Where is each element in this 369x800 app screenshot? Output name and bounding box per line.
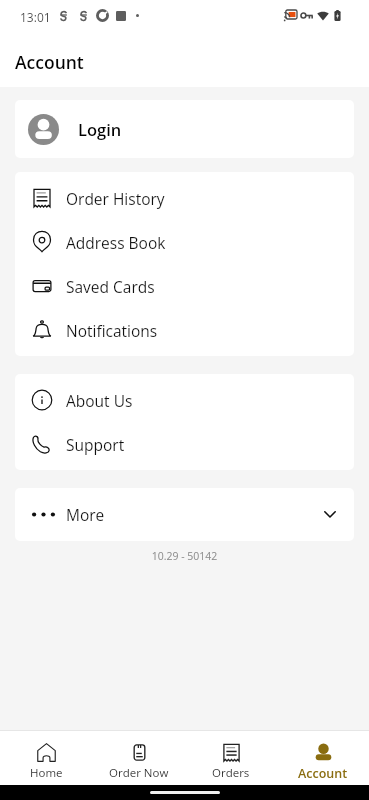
- button[interactable]: More: [15, 488, 354, 541]
- staticText: Notifications: [66, 320, 158, 341]
- staticText: Address Book: [66, 232, 166, 253]
- staticText: Order History: [66, 188, 165, 209]
- staticText: Account: [298, 765, 348, 782]
- staticText: 13:01: [20, 9, 51, 25]
- staticText: About Us: [66, 390, 133, 411]
- button[interactable]: Login: [15, 100, 354, 158]
- staticText: Login: [78, 118, 122, 140]
- button[interactable]: Order History: [15, 176, 354, 220]
- staticText: Order Now: [109, 765, 169, 781]
- button[interactable]: Home: [0, 731, 93, 785]
- staticText: Orders: [212, 765, 250, 781]
- staticText: 10.29 - 50142: [0, 549, 369, 563]
- staticText: Support: [66, 434, 125, 455]
- staticText: Saved Cards: [66, 276, 155, 297]
- button[interactable]: Order Now: [93, 731, 185, 785]
- button[interactable]: Account: [277, 731, 369, 785]
- button[interactable]: Address Book: [15, 220, 354, 264]
- staticText: Home: [30, 765, 63, 781]
- staticText: Account: [15, 50, 84, 74]
- button[interactable]: Orders: [185, 731, 277, 785]
- staticText: More: [66, 504, 105, 525]
- button[interactable]: Support: [15, 422, 354, 466]
- button[interactable]: Saved Cards: [15, 264, 354, 308]
- button[interactable]: Notifications: [15, 308, 354, 352]
- button[interactable]: About Us: [15, 378, 354, 422]
